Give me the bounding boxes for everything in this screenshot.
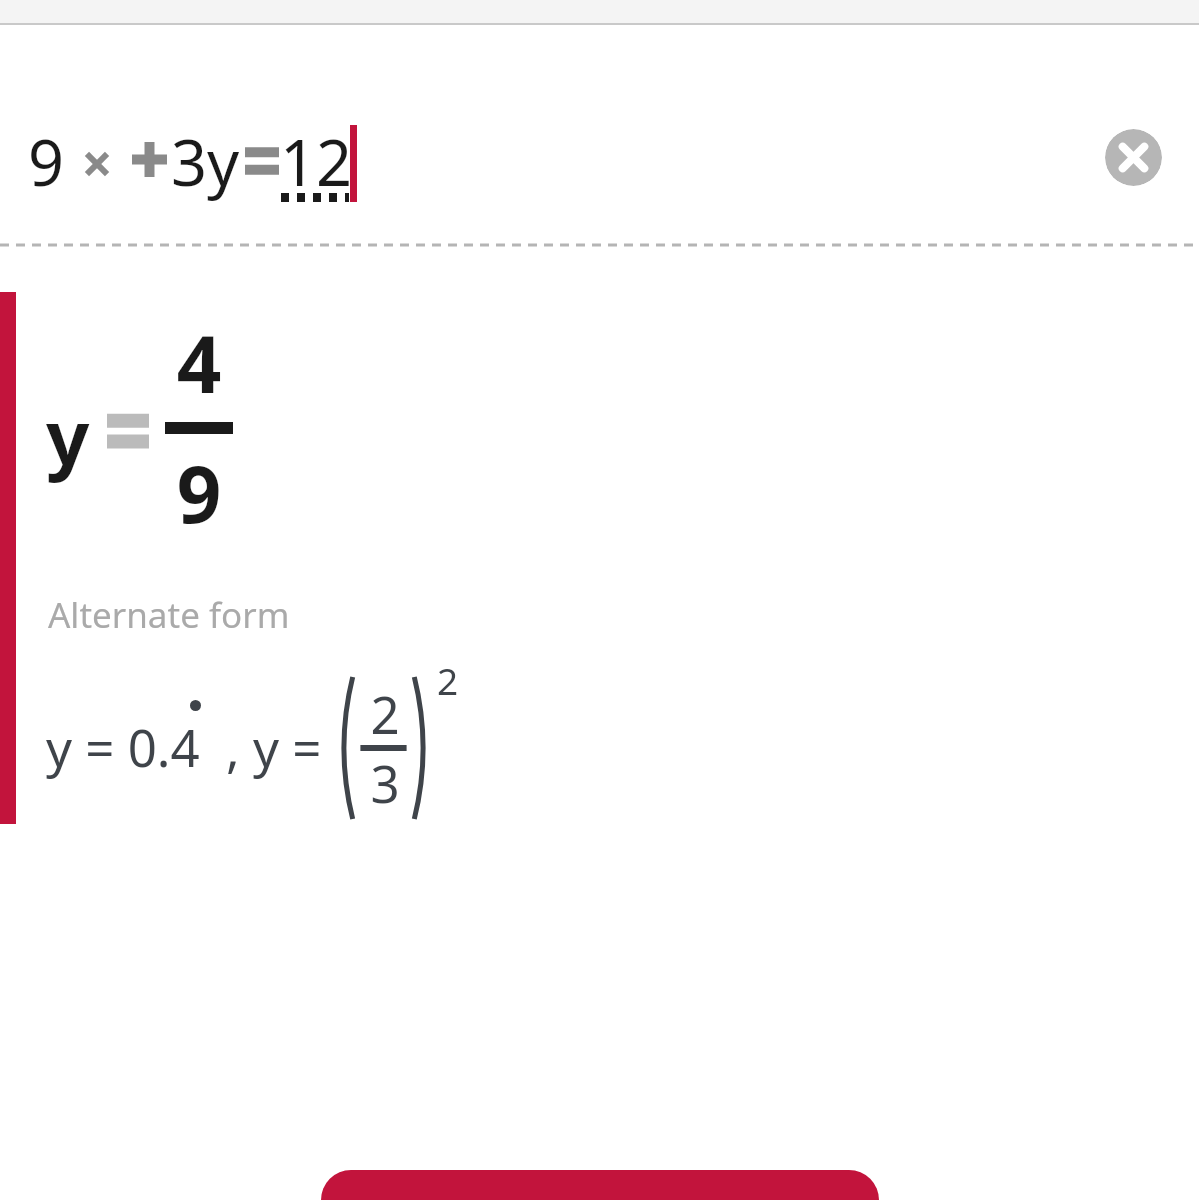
button[interactable]: Clear equation xyxy=(1105,129,1162,186)
staticText: Alternate form xyxy=(48,591,290,639)
staticText: 4 xyxy=(159,310,239,416)
staticText: 3 xyxy=(358,748,412,817)
staticText: y xyxy=(46,384,90,488)
staticText: 2 xyxy=(437,655,459,705)
staticText: , y = xyxy=(226,712,322,781)
staticText: 9 xyxy=(28,119,65,205)
button[interactable]: y = 0.4 xyxy=(0,655,1199,830)
button[interactable]: y xyxy=(0,292,1199,542)
staticText: 3y xyxy=(171,119,240,205)
button[interactable]: Show steps xyxy=(321,1170,879,1200)
staticText: y = 0.4 xyxy=(46,712,200,781)
button[interactable]: 9 xyxy=(0,26,1199,243)
staticText: 9 xyxy=(159,440,239,546)
staticText: 2 xyxy=(358,679,412,748)
staticText: 12 xyxy=(280,119,353,205)
